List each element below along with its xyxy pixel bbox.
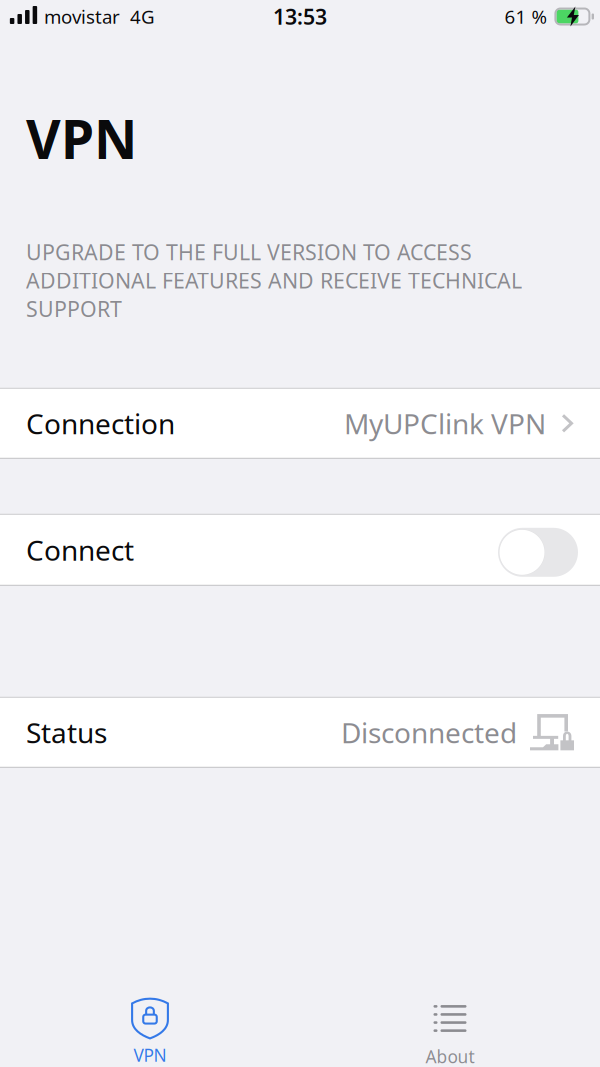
button[interactable]: VPN [0,998,300,1067]
staticText: Connection [26,405,175,442]
staticText: Disconnected [341,714,517,751]
staticText: Connect [26,531,134,568]
staticText: movistar [44,4,120,29]
button[interactable]: Connection [0,389,600,458]
staticText: VPN [26,103,137,174]
staticText: About [425,1045,474,1067]
button[interactable]: Connect [0,515,600,585]
staticText: MyUPClink VPN [344,405,546,442]
staticText: UPGRADE TO THE FULL VERSION TO ACCESS AD… [26,238,522,323]
staticText: 4G [130,4,155,29]
staticText: VPN [133,1043,166,1066]
button[interactable]: About [300,998,600,1067]
staticText: 13:53 [273,2,327,31]
staticText: Status [26,714,107,751]
staticText: 61 % [504,4,547,29]
